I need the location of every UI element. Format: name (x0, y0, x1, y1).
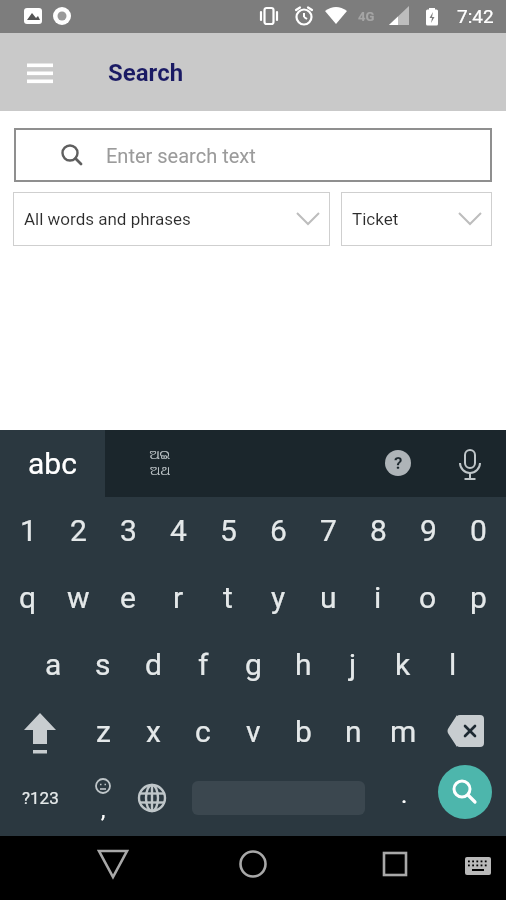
button[interactable]: p (454, 566, 502, 628)
staticText: ?123 (22, 788, 59, 808)
staticText: 1 (20, 513, 37, 548)
staticText: r (173, 580, 184, 615)
staticText: k (395, 647, 411, 682)
button[interactable]: q (4, 566, 52, 628)
staticText: Ticket (352, 209, 399, 229)
button[interactable]: ?123 (9, 767, 71, 829)
staticText: a (45, 647, 62, 682)
button[interactable]: z (79, 700, 127, 762)
button[interactable]: Ticket (341, 192, 492, 246)
button[interactable]: r (154, 566, 202, 628)
staticText: m (390, 714, 417, 749)
staticText: n (345, 714, 362, 749)
staticText: ଅଇ ଅଥ (149, 449, 171, 477)
staticText: w (67, 580, 90, 615)
staticText: o (419, 580, 437, 615)
button[interactable]: , (78, 767, 128, 829)
button[interactable]: j (329, 633, 377, 695)
button[interactable]: Enter search text (14, 128, 492, 182)
button[interactable]: s (79, 633, 127, 695)
button[interactable]: 3 (104, 499, 152, 561)
button[interactable]: i (354, 566, 402, 628)
staticText: Search (108, 59, 184, 87)
staticText: h (295, 647, 312, 682)
button[interactable]: e (104, 566, 152, 628)
button[interactable] (448, 441, 492, 485)
button[interactable] (127, 767, 177, 829)
staticText: y (271, 580, 286, 615)
button[interactable]: d (129, 633, 177, 695)
button[interactable] (10, 700, 70, 762)
button[interactable]: f (179, 633, 227, 695)
staticText: t (223, 580, 233, 615)
button[interactable]: g (229, 633, 277, 695)
button[interactable]: 6 (254, 499, 302, 561)
button[interactable]: c (179, 700, 227, 762)
button[interactable]: abc (0, 430, 105, 497)
button[interactable] (367, 836, 423, 892)
button[interactable]: 0 (454, 499, 502, 561)
staticText: 4G (358, 9, 375, 24)
staticText: abc (28, 446, 77, 481)
staticText: d (145, 647, 162, 682)
button[interactable]: u (304, 566, 352, 628)
staticText: i (374, 580, 382, 615)
button[interactable] (456, 844, 500, 888)
button[interactable]: 9 (404, 499, 452, 561)
button[interactable] (85, 836, 141, 892)
button[interactable]: . (384, 764, 424, 826)
button[interactable]: 2 (54, 499, 102, 561)
button[interactable]: 5 (204, 499, 252, 561)
staticText: c (195, 714, 211, 749)
button[interactable]: n (329, 700, 377, 762)
staticText: s (95, 647, 111, 682)
staticText: v (246, 714, 261, 749)
staticText: z (96, 714, 111, 749)
staticText: ? (394, 453, 403, 473)
button[interactable]: ? (376, 441, 420, 485)
staticText: 5 (220, 513, 237, 548)
staticText: f (198, 647, 209, 682)
button[interactable]: y (254, 566, 302, 628)
button[interactable]: m (379, 700, 427, 762)
button[interactable]: a (29, 633, 77, 695)
staticText: , (101, 797, 106, 823)
button[interactable]: 7 (304, 499, 352, 561)
staticText: b (295, 714, 312, 749)
staticText: All words and phrases (24, 209, 191, 229)
staticText: Enter search text (106, 144, 256, 167)
button[interactable]: 1 (4, 499, 52, 561)
button[interactable]: 8 (354, 499, 402, 561)
button[interactable]: o (404, 566, 452, 628)
staticText: 4 (170, 513, 187, 548)
button[interactable]: b (279, 700, 327, 762)
button[interactable]: v (229, 700, 277, 762)
staticText: 6 (270, 513, 287, 548)
button[interactable]: All words and phrases (13, 192, 330, 246)
button[interactable] (435, 700, 495, 762)
button[interactable]: ଅଇ ଅଥ (125, 429, 195, 496)
button[interactable]: k (379, 633, 427, 695)
button[interactable] (225, 836, 281, 892)
staticText: l (449, 647, 457, 682)
button[interactable] (438, 765, 492, 819)
button[interactable] (12, 45, 68, 101)
staticText: u (320, 580, 337, 615)
staticText: p (470, 580, 487, 615)
staticText: 2 (70, 513, 87, 548)
staticText: 3 (120, 513, 137, 548)
button[interactable]: 4 (154, 499, 202, 561)
staticText: . (401, 781, 408, 809)
button[interactable]: w (54, 566, 102, 628)
button[interactable]: h (279, 633, 327, 695)
staticText: 7 (320, 513, 337, 548)
button[interactable]: t (204, 566, 252, 628)
button[interactable]: l (429, 633, 477, 695)
staticText: 8 (370, 513, 387, 548)
button[interactable]: x (129, 700, 177, 762)
staticText: 7:42 (457, 5, 494, 27)
staticText: x (146, 714, 161, 749)
staticText: 9 (420, 513, 437, 548)
staticText: q (19, 580, 37, 615)
